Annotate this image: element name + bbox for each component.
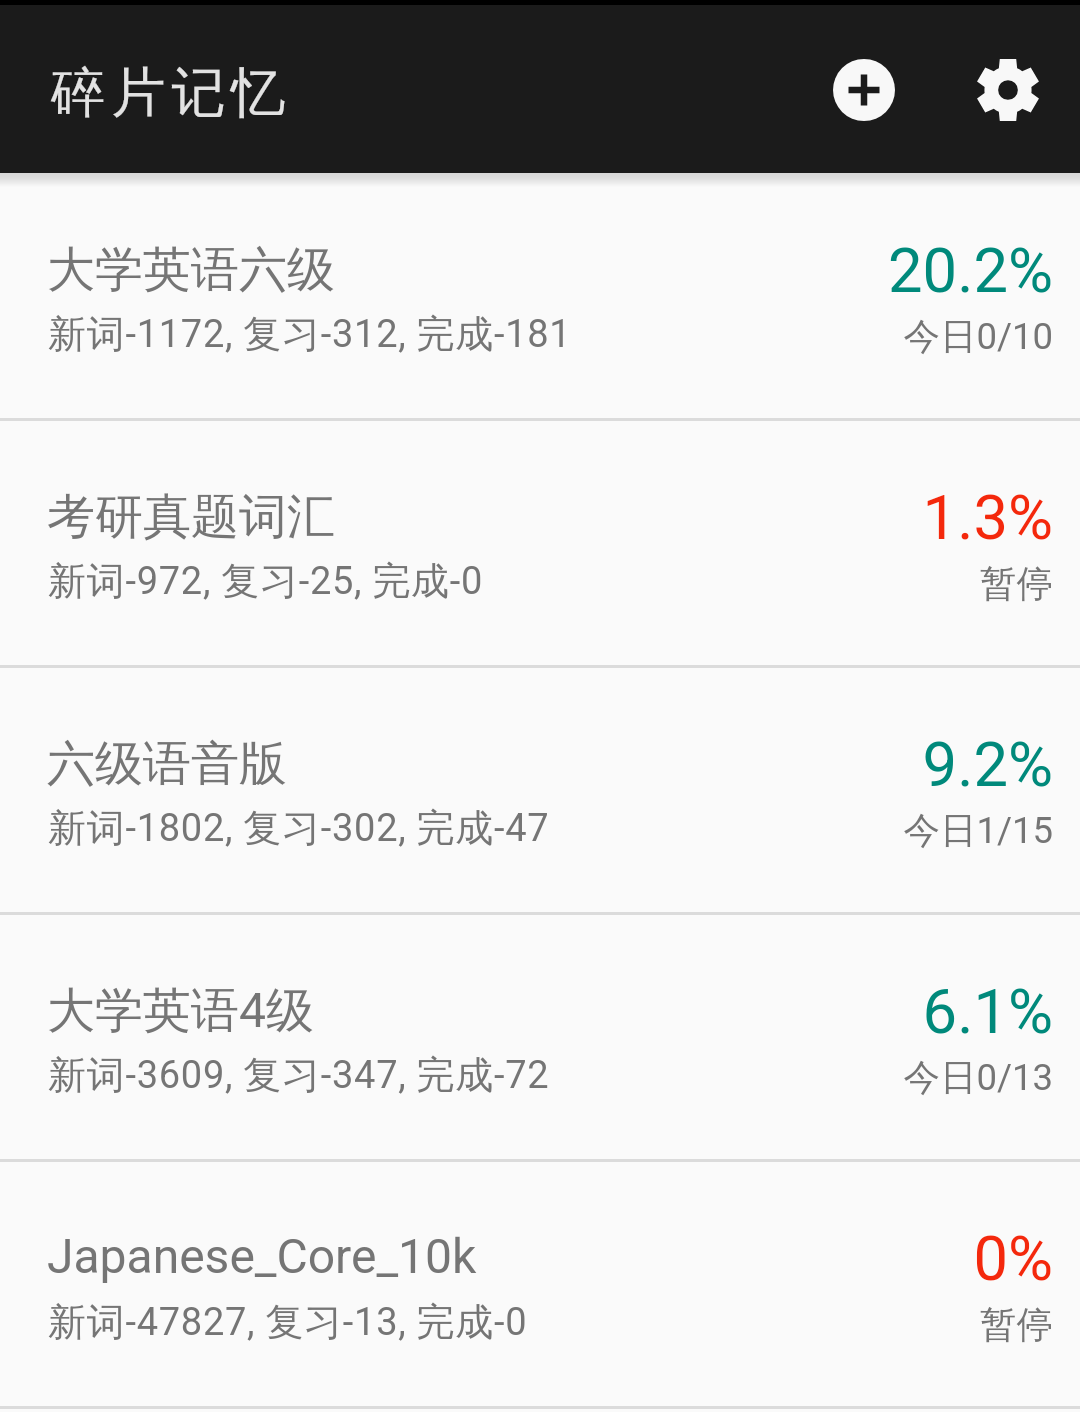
staticText: 9.2% [922, 729, 1053, 801]
staticText: 新词-47827, 复习-13, 完成-0 [48, 1298, 528, 1346]
staticText: 新词-1802, 复习-302, 完成-47 [48, 804, 550, 852]
staticText: 新词-1172, 复习-312, 完成-181 [48, 310, 572, 358]
button[interactable]: Japanese_Core_10k [0, 1162, 1080, 1406]
button[interactable]: 大学英语4级 [0, 915, 1080, 1159]
staticText: 1.3% [922, 482, 1053, 554]
button[interactable]: 大学英语六级 [0, 174, 1080, 418]
staticText: 0% [973, 1223, 1053, 1295]
staticText: 6.1% [922, 976, 1053, 1048]
button[interactable]: Add deck [792, 18, 936, 162]
staticText: Japanese_Core_10k [47, 1228, 477, 1284]
staticText: 新词-3609, 复习-347, 完成-72 [48, 1051, 550, 1099]
button[interactable]: Settings [936, 18, 1080, 162]
staticText: 20.2% [888, 235, 1053, 307]
staticText: 新词-972, 复习-25, 完成-0 [48, 557, 484, 605]
staticText: 今日0/10 [903, 314, 1053, 360]
button[interactable]: 六级语音版 [0, 668, 1080, 912]
button[interactable]: 考研真题词汇 [0, 421, 1080, 665]
staticText: 考研真题词汇 [47, 487, 335, 547]
staticText: 今日0/13 [903, 1055, 1053, 1101]
staticText: 六级语音版 [47, 734, 287, 794]
staticText: 大学英语4级 [47, 981, 314, 1041]
staticText: 碎片记忆 [51, 59, 292, 127]
staticText: 今日1/15 [903, 808, 1053, 854]
staticText: 暂停 [980, 1302, 1053, 1348]
staticText: 大学英语六级 [47, 240, 335, 300]
staticText: 暂停 [980, 561, 1053, 607]
